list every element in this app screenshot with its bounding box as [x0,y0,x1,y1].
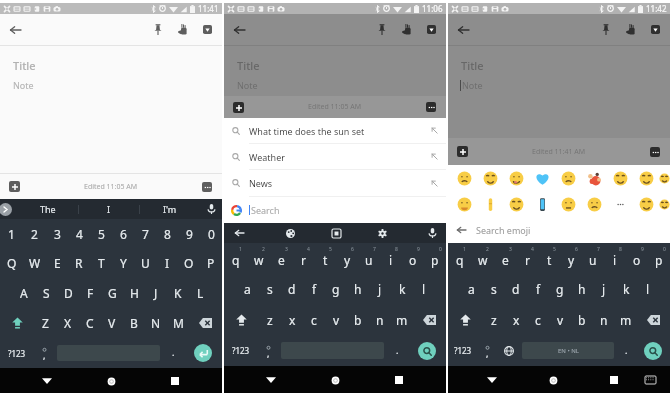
button[interactable]: k [615,273,637,304]
button[interactable]: n [369,304,391,335]
button[interactable]: V [101,308,123,338]
button[interactable]: x [505,304,527,335]
button[interactable]: More options [650,147,660,157]
button[interactable]: Back [224,14,255,45]
button[interactable]: A [12,278,35,308]
button[interactable]: 5 [314,243,336,273]
button[interactable]: d [281,273,303,304]
button[interactable]: v [325,304,347,335]
button[interactable]: Shift [448,304,482,335]
button[interactable]: Archive [643,14,668,45]
button[interactable]: 8 [380,243,402,273]
button[interactable]: I [78,199,139,219]
button[interactable]: Shift [224,304,258,335]
button[interactable]: 9 [402,243,424,273]
button[interactable]: Change language [497,335,520,366]
button[interactable]: Keyboard [640,370,660,390]
button[interactable]: Pin [145,14,170,45]
button[interactable]: Backspace [413,304,446,335]
button[interactable]: F [79,278,101,308]
button[interactable]: ?123 [0,338,33,368]
button[interactable] [529,165,555,191]
button[interactable]: 7 [582,243,604,273]
button[interactable]: 0 [424,243,446,273]
button[interactable] [581,165,607,191]
button[interactable]: The [17,199,78,219]
button[interactable]: Add [233,102,244,113]
button[interactable]: Backspace [189,308,222,338]
button[interactable]: Recents [165,371,185,391]
button[interactable]: n [593,304,615,335]
button[interactable]: ?123 [224,335,257,366]
button[interactable]: S [35,278,57,308]
button[interactable]: Z [34,308,57,338]
button[interactable]: 3 [494,243,516,273]
button[interactable]: b [571,304,593,335]
button[interactable]: Reminder [618,14,643,45]
button[interactable]: Pin [369,14,394,45]
button[interactable]: ?123 [448,335,477,366]
button[interactable]: 6 [112,219,134,248]
button[interactable] [555,165,581,191]
button[interactable]: 6 [560,243,582,273]
button[interactable]: Expand suggestions [0,199,17,219]
button[interactable]: Back [448,14,479,45]
button[interactable]: Search emoji [448,217,670,243]
button[interactable] [477,165,503,191]
button[interactable]: Backspace [637,304,670,335]
button[interactable]: N [145,308,167,338]
button[interactable]: Weather [224,144,446,169]
button[interactable]: , [477,335,497,366]
button[interactable]: 4 [516,243,538,273]
button[interactable]: f [303,273,325,304]
button[interactable]: 9 [178,219,200,248]
button[interactable]: f [527,273,549,304]
button[interactable]: . [616,335,636,366]
button[interactable]: g [549,273,571,304]
button[interactable]: Home [101,371,121,391]
button[interactable]: Recents [604,370,624,390]
button[interactable]: Voice input [418,223,446,243]
button[interactable]: Search [408,335,446,366]
button[interactable]: 3 [46,219,68,248]
button[interactable]: What time does the sun set [224,118,446,143]
button[interactable]: E [46,248,68,278]
button[interactable]: m [615,304,637,335]
button[interactable]: , [33,338,55,368]
button[interactable]: Search [224,197,446,223]
button[interactable]: X [57,308,79,338]
button[interactable] [659,191,670,217]
button[interactable]: D [57,278,79,308]
button[interactable]: 1 [448,243,471,273]
button[interactable]: h [347,273,369,304]
button[interactable]: . [162,338,184,368]
button[interactable] [503,165,529,191]
button[interactable]: 4 [68,219,90,248]
button[interactable]: c [303,304,325,335]
button[interactable]: More options [202,182,212,192]
button[interactable]: . [386,335,408,366]
button[interactable]: 7 [358,243,380,273]
button[interactable]: Enter [184,338,222,368]
button[interactable]: Add [9,181,20,192]
button[interactable]: 2 [247,243,270,273]
button[interactable]: m [391,304,413,335]
button[interactable]: j [369,273,391,304]
button[interactable]: Reminder [170,14,195,45]
button[interactable] [581,191,607,217]
button[interactable] [529,191,555,217]
button[interactable]: Shift [0,308,34,338]
button[interactable]: a [236,273,259,304]
button[interactable]: Recents [389,370,409,390]
button[interactable]: J [145,278,167,308]
button[interactable]: M [167,308,189,338]
button[interactable]: 1 [0,219,23,248]
button[interactable] [607,165,633,191]
button[interactable]: v [549,304,571,335]
button[interactable]: G [101,278,123,308]
button[interactable]: 3 [270,243,292,273]
button[interactable]: P [200,248,222,278]
button[interactable] [451,165,477,191]
button[interactable]: s [483,273,505,304]
